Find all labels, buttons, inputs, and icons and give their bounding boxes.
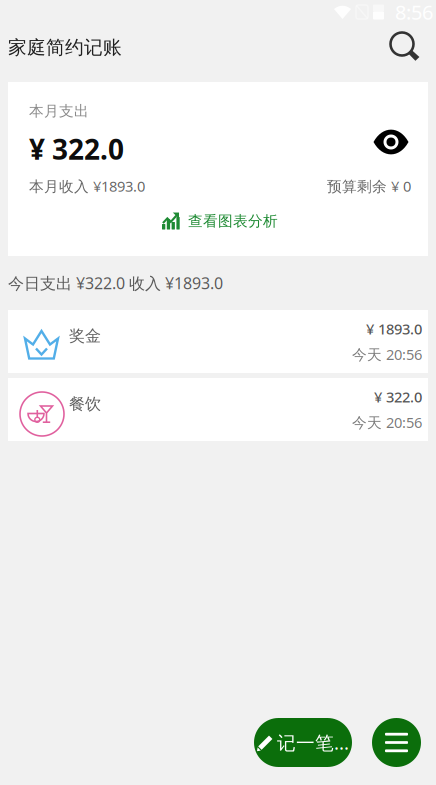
staticText: 预算剩余 ¥ 0 — [327, 176, 411, 196]
staticText: 本月支出 — [29, 102, 89, 120]
staticText: 家庭简约记账 — [8, 36, 122, 59]
staticText: 本月收入 ¥1893.0 — [29, 176, 145, 196]
staticText: 今天 20:56 — [352, 412, 422, 432]
staticText: 今日支出 ¥322.0 收入 ¥1893.0 — [8, 272, 223, 294]
staticText: 查看图表分析 — [188, 212, 278, 230]
button[interactable]: Menu — [372, 718, 421, 767]
button[interactable]: 查看图表分析 — [29, 209, 411, 233]
staticText: ¥ 1893.0 — [366, 319, 422, 338]
staticText: 8:56 — [395, 0, 433, 25]
button[interactable]: Search — [382, 24, 429, 71]
button[interactable]: 记一笔... — [254, 718, 352, 767]
staticText: 今天 20:56 — [352, 344, 422, 364]
staticText: 奖金 — [69, 326, 101, 346]
button[interactable]: 奖金 ¥ 1893.0 — [8, 310, 428, 373]
button[interactable]: 餐饮 ¥ 322.0 — [8, 378, 428, 441]
staticText: ¥ 322.0 — [29, 130, 124, 168]
staticText: 记一笔... — [277, 730, 349, 755]
button[interactable]: Toggle amount visibility — [371, 134, 411, 164]
staticText: ¥ 322.0 — [374, 387, 422, 406]
staticText: 餐饮 — [69, 394, 101, 414]
